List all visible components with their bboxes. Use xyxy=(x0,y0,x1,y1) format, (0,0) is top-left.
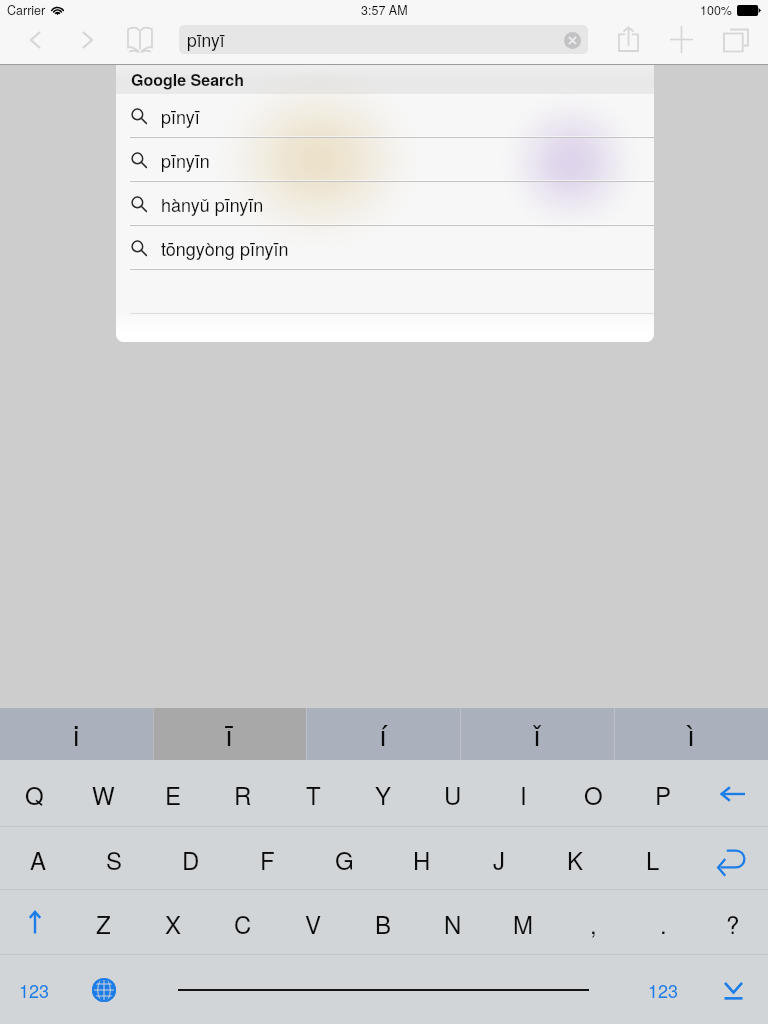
staticText: D xyxy=(182,842,200,876)
button[interactable]: I xyxy=(488,760,558,827)
staticText: Q xyxy=(25,777,44,811)
button[interactable]: 123 xyxy=(628,955,698,1024)
staticText: pīnyī xyxy=(161,103,200,129)
button[interactable]: N xyxy=(418,890,488,955)
staticText: W xyxy=(92,777,115,811)
staticText: J xyxy=(493,842,505,876)
staticText: E xyxy=(165,777,182,811)
button[interactable]: tōngyòng pīnyīn xyxy=(116,226,654,270)
staticText: H xyxy=(413,842,431,876)
staticText: . xyxy=(660,906,667,940)
button[interactable]: Bookmarks xyxy=(122,21,158,57)
button[interactable]: L xyxy=(614,827,691,890)
button[interactable]: V xyxy=(278,890,348,955)
staticText: ì xyxy=(687,713,696,755)
staticText: 123 xyxy=(648,977,679,1003)
button[interactable]: Q xyxy=(0,760,69,827)
button[interactable]: ? xyxy=(698,890,768,955)
button[interactable]: O xyxy=(558,760,628,827)
button[interactable] xyxy=(691,827,768,890)
button[interactable]: New Tab xyxy=(663,21,699,57)
staticText: hànyǔ pīnyīn xyxy=(161,191,264,217)
button[interactable]: Hide keyboard xyxy=(698,955,768,1024)
button[interactable]: Clear xyxy=(563,31,581,49)
button[interactable]: B xyxy=(348,890,418,955)
button[interactable]: R xyxy=(208,760,278,827)
staticText: F xyxy=(260,842,275,876)
button[interactable] xyxy=(0,890,69,955)
button[interactable]: i xyxy=(0,708,153,760)
button[interactable]: M xyxy=(488,890,558,955)
button[interactable]: H xyxy=(383,827,460,890)
button[interactable]: ǐ xyxy=(460,708,614,760)
button[interactable] xyxy=(698,760,768,827)
staticText: í xyxy=(379,713,388,755)
staticText: C xyxy=(234,906,252,940)
staticText: Z xyxy=(96,906,111,940)
staticText: T xyxy=(306,777,321,811)
button[interactable]: hànyǔ pīnyīn xyxy=(116,182,654,226)
staticText: pīnyī xyxy=(187,27,225,52)
staticText: N xyxy=(444,906,462,940)
staticText: Y xyxy=(375,777,392,811)
staticText: ǐ xyxy=(533,713,542,755)
button[interactable]: 123 xyxy=(0,955,69,1024)
staticText: K xyxy=(567,842,584,876)
staticText: U xyxy=(444,777,462,811)
button[interactable]: Change keyboard xyxy=(69,955,139,1024)
button[interactable]: A xyxy=(0,827,76,890)
button[interactable]: pīnyī xyxy=(116,94,654,138)
staticText: L xyxy=(646,842,660,876)
button[interactable]: Back xyxy=(17,22,53,58)
button[interactable]: T xyxy=(278,760,348,827)
button[interactable]: P xyxy=(628,760,698,827)
button[interactable]: , xyxy=(558,890,628,955)
button[interactable]: Forward xyxy=(69,22,105,58)
button[interactable]: Tabs xyxy=(718,21,754,57)
button[interactable]: U xyxy=(418,760,488,827)
button[interactable]: Y xyxy=(348,760,418,827)
button[interactable]: ì xyxy=(614,708,768,760)
staticText: A xyxy=(30,842,47,876)
button[interactable]: pīnyīn xyxy=(116,138,654,182)
button[interactable]: D xyxy=(152,827,229,890)
staticText: S xyxy=(106,842,123,876)
button[interactable]: Share xyxy=(610,21,646,57)
staticText: Google Search xyxy=(131,68,244,91)
staticText: pīnyīn xyxy=(161,147,210,173)
staticText: 3:57 AM xyxy=(361,1,408,19)
button[interactable]: S xyxy=(76,827,152,890)
button[interactable]: pīnyī xyxy=(179,25,588,54)
staticText: ī xyxy=(225,713,234,755)
staticText: P xyxy=(655,777,672,811)
staticText: G xyxy=(335,842,354,876)
button[interactable]: . xyxy=(628,890,698,955)
button[interactable]: C xyxy=(208,890,278,955)
staticText: i xyxy=(73,713,80,755)
staticText: , xyxy=(590,906,597,940)
staticText: tōngyòng pīnyīn xyxy=(161,235,289,261)
button[interactable]: F xyxy=(229,827,306,890)
staticText: O xyxy=(584,777,603,811)
staticText: X xyxy=(165,906,182,940)
button[interactable]: X xyxy=(138,890,208,955)
button[interactable]: J xyxy=(460,827,537,890)
staticText: ? xyxy=(726,906,740,940)
staticText: Carrier xyxy=(7,1,46,19)
staticText: B xyxy=(375,906,392,940)
button[interactable]: ī xyxy=(153,708,306,760)
staticText: I xyxy=(520,777,527,811)
button[interactable]: í xyxy=(306,708,460,760)
button[interactable]: G xyxy=(306,827,383,890)
staticText: V xyxy=(305,906,322,940)
button[interactable]: E xyxy=(138,760,208,827)
button[interactable]: K xyxy=(537,827,614,890)
button[interactable]: Z xyxy=(69,890,138,955)
staticText: M xyxy=(513,906,533,940)
staticText: 123 xyxy=(19,977,50,1003)
staticText: R xyxy=(234,777,252,811)
button[interactable]: Space xyxy=(139,955,628,1024)
button[interactable]: W xyxy=(69,760,138,827)
staticText: 100% xyxy=(700,1,732,19)
